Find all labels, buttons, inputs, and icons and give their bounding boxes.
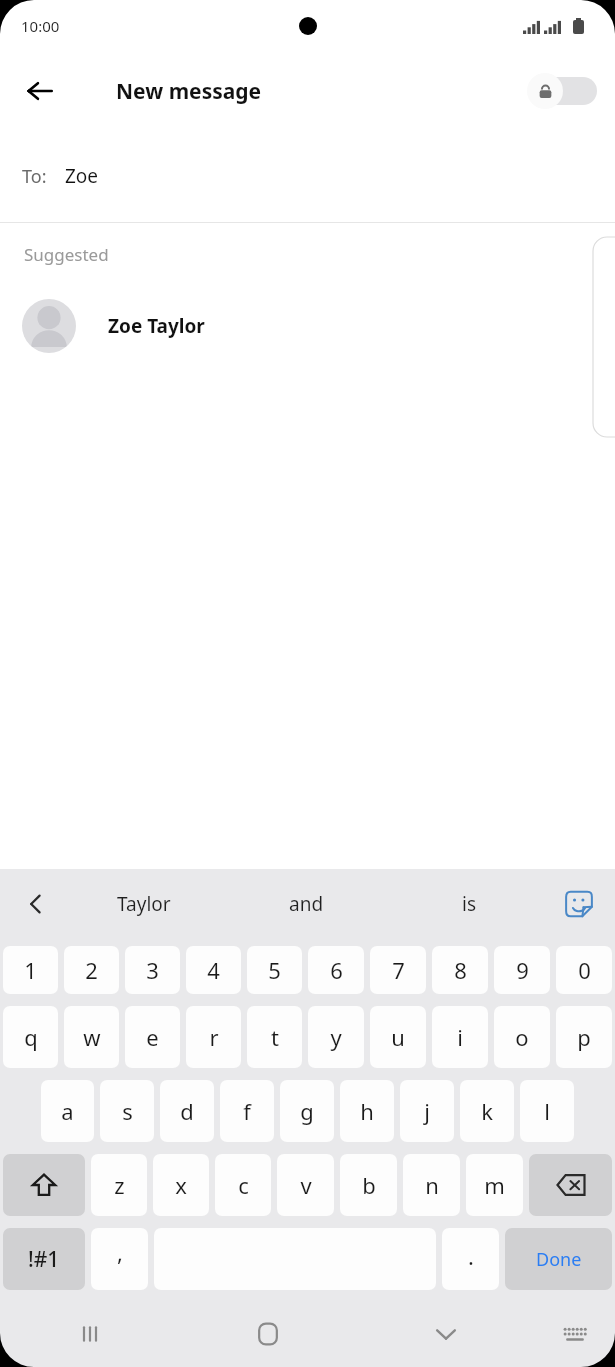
button[interactable]: !#1 (3, 1228, 85, 1290)
button[interactable]: l (520, 1080, 574, 1142)
staticText: j (424, 1096, 430, 1126)
staticText: 1 (24, 955, 37, 985)
button[interactable]: Hide keyboard (357, 1301, 535, 1367)
button[interactable]: v (277, 1154, 334, 1216)
staticText: l (544, 1096, 550, 1126)
staticText: h (360, 1096, 374, 1126)
button[interactable]: Recents (0, 1301, 179, 1367)
staticText: d (180, 1096, 194, 1126)
staticText: and (289, 891, 324, 917)
button[interactable]: u (370, 1006, 426, 1068)
staticText: s (122, 1096, 133, 1126)
staticText: . (468, 1241, 474, 1271)
button[interactable]: h (340, 1080, 394, 1142)
staticText: New message (116, 77, 262, 106)
button[interactable]: p (556, 1006, 612, 1068)
button[interactable]: g (280, 1080, 334, 1142)
button[interactable]: z (91, 1154, 147, 1216)
staticText: b (362, 1170, 376, 1200)
button[interactable]: Done (505, 1228, 612, 1290)
button[interactable]: Stickers (557, 882, 601, 926)
staticText: p (577, 1022, 591, 1052)
staticText: z (114, 1170, 125, 1200)
button[interactable]: w (64, 1006, 119, 1068)
staticText: Zoe (65, 163, 99, 189)
button[interactable]: 9 (494, 946, 550, 994)
button[interactable]: f (220, 1080, 274, 1142)
button[interactable]: t (247, 1006, 302, 1068)
staticText: q (24, 1022, 38, 1052)
button[interactable]: Secure message toggle (527, 73, 599, 109)
button[interactable]: 1 (3, 946, 58, 994)
button[interactable]: b (340, 1154, 397, 1216)
staticText: k (481, 1096, 493, 1126)
button[interactable]: r (186, 1006, 241, 1068)
button[interactable]: e (125, 1006, 180, 1068)
staticText: i (457, 1022, 463, 1052)
button[interactable]: i (432, 1006, 488, 1068)
staticText: e (146, 1022, 159, 1052)
button[interactable]: n (403, 1154, 460, 1216)
button[interactable]: . (442, 1228, 499, 1290)
button[interactable]: , (91, 1228, 148, 1290)
staticText: 10:00 (21, 16, 60, 36)
staticText: Taylor (117, 891, 171, 917)
button[interactable]: s (100, 1080, 154, 1142)
button[interactable]: j (400, 1080, 454, 1142)
staticText: x (175, 1170, 187, 1200)
button[interactable]: 2 (64, 946, 119, 994)
button[interactable]: o (494, 1006, 550, 1068)
button[interactable]: 7 (370, 946, 426, 994)
button[interactable]: is (388, 869, 551, 939)
staticText: w (83, 1022, 101, 1052)
button[interactable]: 0 (556, 946, 612, 994)
staticText: v (300, 1170, 312, 1200)
button[interactable]: x (153, 1154, 209, 1216)
staticText: 4 (207, 955, 220, 985)
staticText: 6 (330, 955, 343, 985)
button[interactable]: 4 (186, 946, 241, 994)
staticText: u (391, 1022, 405, 1052)
button[interactable]: 5 (247, 946, 302, 994)
staticText: 5 (268, 955, 281, 985)
staticText: 8 (454, 955, 467, 985)
staticText: 2 (85, 955, 98, 985)
button[interactable]: a (41, 1080, 94, 1142)
staticText: r (209, 1022, 219, 1052)
staticText: 0 (578, 955, 591, 985)
staticText: 3 (146, 955, 159, 985)
button[interactable]: q (3, 1006, 58, 1068)
staticText: Zoe Taylor (108, 313, 205, 339)
button[interactable]: Taylor (62, 869, 225, 939)
button[interactable]: 8 (432, 946, 488, 994)
button[interactable]: Previous suggestions (12, 880, 60, 928)
staticText: y (330, 1022, 342, 1052)
button[interactable]: Back (12, 63, 68, 119)
staticText: o (515, 1022, 529, 1052)
button[interactable]: Zoe Taylor (0, 290, 615, 362)
button[interactable]: 6 (308, 946, 364, 994)
staticText: Suggested (24, 243, 109, 266)
staticText: f (243, 1096, 251, 1126)
button[interactable]: Home (179, 1301, 357, 1367)
button[interactable]: and (225, 869, 388, 939)
button[interactable]: Shift (3, 1154, 85, 1216)
button[interactable]: m (466, 1154, 523, 1216)
button[interactable]: k (460, 1080, 514, 1142)
staticText: is (462, 891, 477, 917)
staticText: , (117, 1237, 123, 1267)
button[interactable]: d (160, 1080, 214, 1142)
button[interactable]: Keyboard settings (535, 1301, 615, 1367)
staticText: a (61, 1096, 74, 1126)
staticText: g (300, 1096, 314, 1126)
staticText: n (425, 1170, 439, 1200)
staticText: m (484, 1170, 505, 1200)
button[interactable]: c (215, 1154, 271, 1216)
button[interactable]: y (308, 1006, 364, 1068)
staticText: 9 (516, 955, 529, 985)
staticText: Done (536, 1247, 582, 1272)
button[interactable]: Backspace (529, 1154, 612, 1216)
staticText: To: (22, 164, 47, 189)
button[interactable]: 3 (125, 946, 180, 994)
